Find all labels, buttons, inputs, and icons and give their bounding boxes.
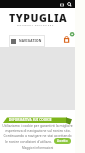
button[interactable]: Search	[66, 1, 73, 8]
button[interactable]: NAVIGATION	[9, 35, 45, 47]
staticText: GOURMET DESIGNERS	[17, 24, 54, 27]
staticText: INFORMATIVA SUI COOKIE	[9, 118, 52, 122]
button[interactable]: Accetto	[54, 138, 71, 144]
button[interactable]: Shopping cart	[63, 31, 75, 43]
staticText: Accetto	[57, 139, 68, 143]
staticText: Utilizziamo i cookie per garantirti la m…	[2, 123, 73, 128]
staticText: le nostre condizioni d'utilizzo.	[5, 139, 52, 144]
staticText: NAVIGATION	[19, 39, 42, 43]
staticText: Continuando a navigare ne stai accettand…	[3, 133, 72, 138]
staticText: esperienza di navigazione sul nostro sit…	[5, 128, 71, 133]
button[interactable]: Gallery	[58, 1, 65, 8]
staticText: TYPUGLIA	[9, 11, 68, 25]
button[interactable]: Maggiori informazioni	[22, 146, 54, 150]
